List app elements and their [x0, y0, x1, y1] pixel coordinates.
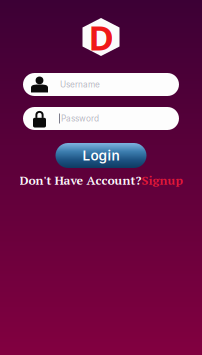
staticText: D [88, 13, 113, 61]
staticText: Signup [141, 172, 182, 188]
button[interactable]: Don't Have Account? [19, 172, 182, 188]
staticText: Don't Have Account? [19, 172, 141, 188]
staticText: Password [61, 113, 99, 123]
staticText: Username [60, 79, 100, 89]
staticText: Login [82, 147, 119, 164]
button[interactable]: Login [55, 143, 146, 168]
